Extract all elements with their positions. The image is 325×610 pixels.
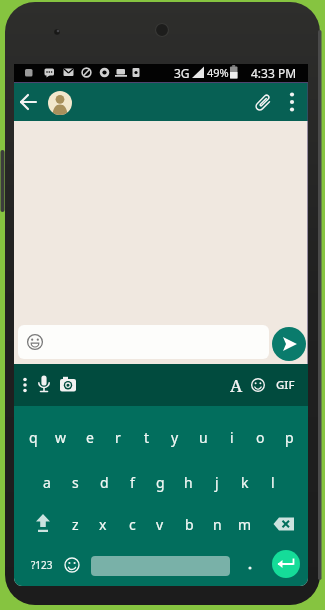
button[interactable]: m [231, 512, 259, 536]
button[interactable] [29, 511, 57, 537]
staticText: A [230, 374, 243, 397]
staticText: 4:33 PM [251, 65, 297, 81]
button[interactable]: f [118, 470, 146, 494]
staticText: x [99, 515, 107, 534]
button[interactable]: e [76, 425, 104, 449]
button[interactable]: v [146, 512, 174, 536]
button[interactable] [272, 327, 306, 361]
staticText: q [29, 428, 38, 447]
button[interactable]: p [275, 425, 303, 449]
staticText: k [241, 473, 249, 492]
button[interactable]: u [189, 425, 217, 449]
button[interactable]: y [161, 425, 189, 449]
button[interactable]: n [203, 512, 231, 536]
button[interactable] [16, 370, 34, 400]
staticText: e [86, 428, 94, 447]
button[interactable] [282, 88, 302, 116]
button[interactable]: GIF [270, 370, 300, 400]
staticText: n [213, 515, 222, 534]
staticText: p [285, 428, 294, 447]
staticText: ?123 [31, 558, 53, 572]
button[interactable]: w [47, 425, 75, 449]
staticText: u [199, 428, 208, 447]
staticText: j [215, 473, 219, 492]
staticText: GIF [276, 377, 295, 393]
button[interactable] [248, 370, 268, 400]
staticText: y [171, 428, 179, 447]
button[interactable] [91, 556, 230, 576]
staticText: 49% [207, 65, 229, 80]
button[interactable] [271, 512, 299, 536]
button[interactable] [272, 550, 300, 578]
staticText: i [230, 428, 234, 447]
staticText: r [115, 428, 121, 447]
staticText: v [156, 515, 164, 534]
staticText: f [130, 473, 135, 492]
button[interactable]: j [203, 470, 231, 494]
button[interactable]: l [259, 470, 287, 494]
button[interactable]: r [104, 425, 132, 449]
button[interactable]: h [174, 470, 202, 494]
button[interactable] [48, 91, 72, 115]
staticText: a [43, 473, 51, 492]
button[interactable]: q [19, 425, 47, 449]
button[interactable]: g [146, 470, 174, 494]
button[interactable] [18, 88, 42, 116]
button[interactable]: s [61, 470, 89, 494]
button[interactable] [33, 370, 55, 400]
staticText: t [144, 428, 150, 447]
staticText: m [238, 515, 252, 534]
staticText: d [100, 473, 109, 492]
staticText: w [55, 428, 67, 447]
staticText: c [129, 515, 136, 534]
staticText: g [156, 473, 165, 492]
staticText: z [72, 515, 79, 534]
button[interactable] [60, 553, 84, 577]
button[interactable] [18, 325, 269, 359]
staticText: 3G [174, 65, 190, 81]
staticText: o [256, 428, 265, 447]
button[interactable]: b [175, 512, 203, 536]
button[interactable]: d [90, 470, 118, 494]
button[interactable]: i [218, 425, 246, 449]
staticText: h [184, 473, 193, 492]
button[interactable]: 3G [172, 64, 192, 81]
staticText: s [72, 473, 79, 492]
staticText: b [185, 515, 194, 534]
button[interactable] [250, 90, 276, 116]
button[interactable]: a [33, 470, 61, 494]
staticText: l [271, 473, 275, 492]
button[interactable]: A [225, 370, 247, 400]
button[interactable]: c [118, 512, 146, 536]
button[interactable]: t [133, 425, 161, 449]
button[interactable]: z [61, 512, 89, 536]
button[interactable]: ?123 [25, 553, 59, 577]
button[interactable]: k [231, 470, 259, 494]
button[interactable]: x [89, 512, 117, 536]
button[interactable]: o [246, 425, 274, 449]
button[interactable] [57, 370, 79, 400]
